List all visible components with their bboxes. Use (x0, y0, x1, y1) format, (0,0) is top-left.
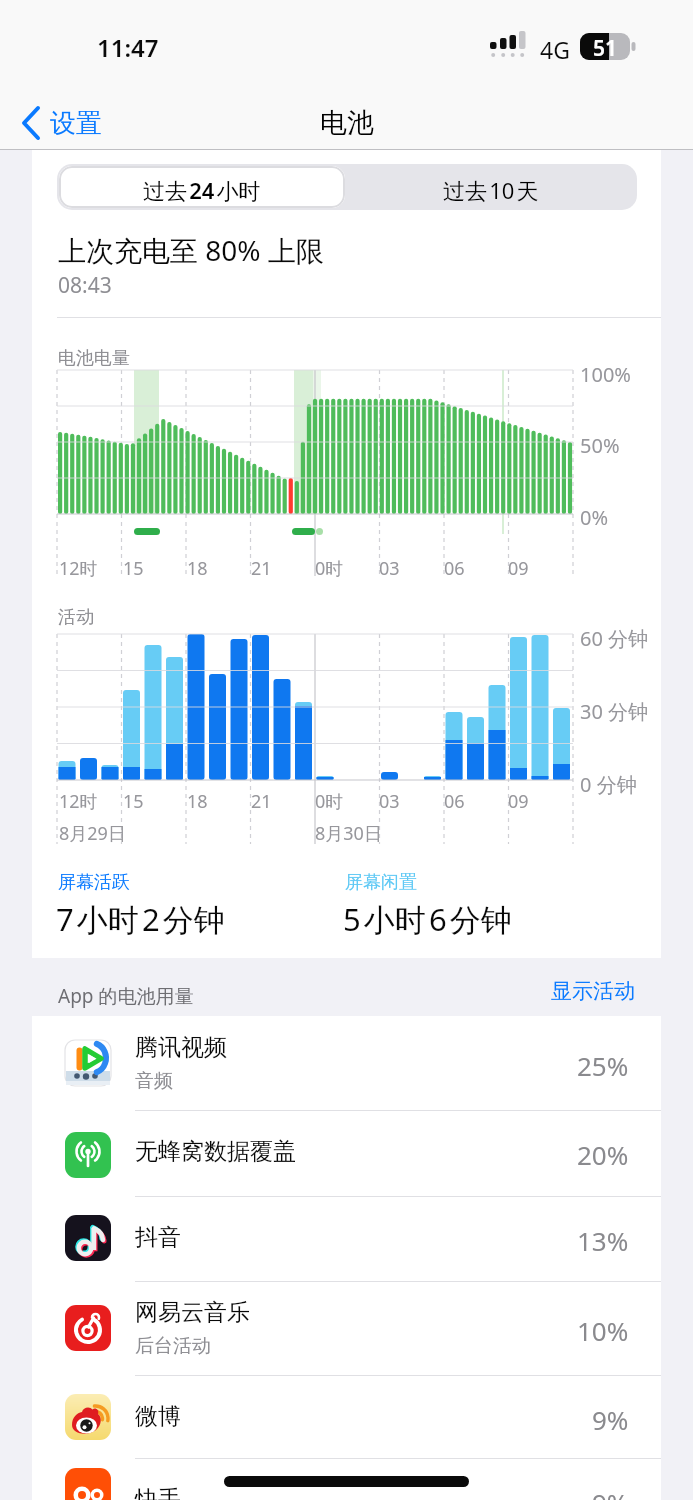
button[interactable] (32, 1110, 661, 1195)
staticText: 过去 10 天 (443, 175, 539, 205)
staticText: 屏幕活跃 (58, 871, 130, 894)
staticText: 11:47 (97, 31, 159, 64)
button[interactable]: 显示活动 (435, 978, 635, 1004)
staticText: 无蜂窝数据覆盖 (135, 1137, 296, 1166)
staticText: 4G (540, 34, 570, 65)
staticText: 18 (187, 556, 208, 581)
staticText: 13% (577, 1223, 629, 1258)
staticText: 18 (187, 789, 208, 814)
button[interactable] (32, 1375, 661, 1460)
staticText: 显示活动 (551, 978, 635, 1004)
staticText: 后台活动 (135, 1334, 211, 1358)
staticText: 08:43 (58, 271, 112, 300)
staticText: 微博 (135, 1402, 181, 1431)
staticText: 网易云音乐 (135, 1298, 250, 1327)
staticText: 7 小时 2 分钟 (56, 898, 225, 940)
staticText: 设置 (50, 107, 102, 140)
staticText: 21 (251, 789, 272, 814)
staticText: 03 (379, 789, 400, 814)
staticText: 06 (444, 556, 465, 581)
button[interactable] (59, 166, 345, 208)
button[interactable] (32, 1281, 661, 1375)
staticText: 12时 (59, 789, 98, 814)
staticText: 8月29日 (59, 821, 126, 846)
staticText: 25% (577, 1048, 629, 1083)
staticText: 0时 (315, 789, 344, 814)
button[interactable] (32, 1196, 661, 1281)
button[interactable] (347, 166, 635, 208)
staticText: 音频 (135, 1069, 173, 1093)
staticText: 0时 (315, 556, 344, 581)
staticText: 50% (580, 432, 620, 459)
staticText: 活动 (58, 606, 94, 629)
staticText: 09 (508, 556, 529, 581)
staticText: 15 (123, 789, 144, 814)
staticText: 09 (508, 789, 529, 814)
staticText: 腾讯视频 (135, 1033, 227, 1062)
staticText: 过去 24 小时 (143, 175, 261, 205)
staticText: 0% (580, 504, 609, 531)
staticText: App 的电池用量 (58, 983, 194, 1009)
staticText: 20% (577, 1137, 629, 1172)
staticText: 21 (251, 556, 272, 581)
staticText: 9% (592, 1485, 629, 1500)
staticText: 12时 (59, 556, 98, 581)
staticText: 100% (580, 361, 631, 388)
staticText: 51 (593, 34, 618, 63)
staticText: 抖音 (135, 1223, 181, 1252)
staticText: 9% (592, 1402, 629, 1437)
staticText: 06 (444, 789, 465, 814)
staticText: 60 分钟 (580, 625, 649, 652)
button[interactable] (32, 1016, 661, 1110)
staticText: 8月30日 (315, 821, 382, 846)
staticText: 10% (577, 1313, 629, 1348)
staticText: 电池电量 (58, 347, 130, 370)
staticText: 上次充电至 80% 上限 (58, 231, 324, 269)
staticText: 屏幕闲置 (345, 871, 417, 894)
staticText: 15 (123, 556, 144, 581)
staticText: 电池 (320, 106, 374, 140)
staticText: 03 (379, 556, 400, 581)
staticText: 0 分钟 (580, 771, 637, 798)
staticText: 5 小时 6 分钟 (343, 898, 512, 940)
button[interactable] (14, 100, 144, 146)
staticText: 快手 (135, 1485, 181, 1500)
staticText: 30 分钟 (580, 698, 649, 725)
button[interactable] (32, 1458, 661, 1500)
